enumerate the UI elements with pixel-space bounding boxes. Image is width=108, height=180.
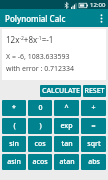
button[interactable]: More options (94, 11, 108, 25)
button[interactable]: tan (54, 136, 79, 152)
staticText: ( (13, 121, 16, 131)
button[interactable]: * (2, 100, 26, 116)
button[interactable]: ^ (54, 100, 79, 116)
staticText: CALCULATE (42, 86, 80, 96)
button[interactable]: sin (2, 136, 26, 152)
staticText: exp (60, 121, 73, 131)
staticText: abs (88, 157, 100, 167)
staticText: tan (61, 139, 73, 149)
button[interactable]: ) (28, 118, 52, 134)
staticText: cos (34, 139, 46, 149)
staticText: Polynomial Calc (5, 13, 66, 24)
button[interactable]: + (81, 100, 106, 116)
button[interactable]: exp (54, 118, 79, 134)
button[interactable]: asin (2, 154, 26, 170)
button[interactable]: acos (28, 154, 52, 170)
staticText: RESET (84, 86, 105, 96)
staticText: sin (9, 139, 19, 149)
staticText: sqrt (87, 139, 101, 149)
staticText: acos (32, 157, 48, 167)
button[interactable]: RESET (83, 85, 106, 97)
staticText: asin (7, 157, 21, 167)
staticText: 12x-2+8x-1=-1 (6, 34, 54, 45)
button[interactable]: sqrt (81, 136, 106, 152)
staticText: ) (39, 121, 42, 131)
button[interactable]: cos (28, 136, 52, 152)
staticText: ^ (64, 103, 69, 113)
button[interactable]: abs (81, 154, 106, 170)
button[interactable]: CALCULATE (40, 85, 81, 97)
button[interactable]: ( (2, 118, 26, 134)
button[interactable]: 0 (28, 100, 52, 116)
staticText: + (91, 103, 96, 113)
staticText: atan (59, 157, 75, 167)
button[interactable]: = (81, 118, 106, 134)
staticText: = (91, 121, 96, 131)
button[interactable]: atan (54, 154, 79, 170)
staticText: 0 (38, 103, 43, 113)
staticText: X = -6, 1083.633593 (6, 52, 70, 62)
staticText: 12:00 (90, 1, 106, 9)
staticText: with error : 0.712334 (6, 64, 75, 74)
staticText: * (12, 103, 16, 113)
